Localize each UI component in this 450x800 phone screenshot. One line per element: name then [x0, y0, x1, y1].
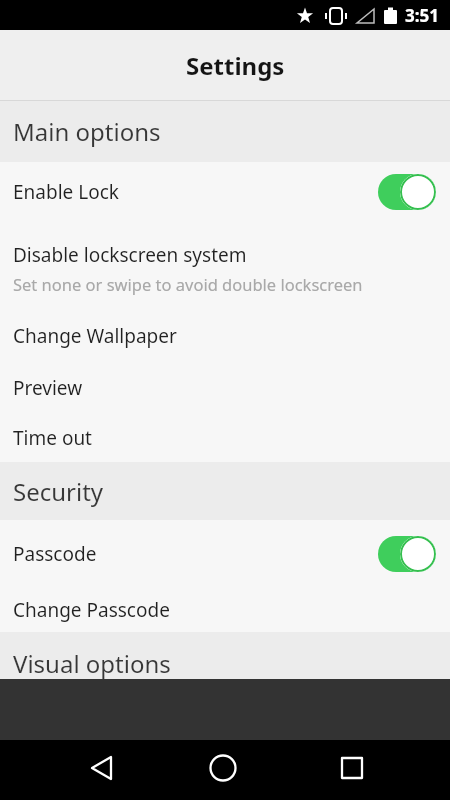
staticText: Security [13, 475, 104, 508]
button[interactable] [0, 740, 150, 800]
button[interactable] [300, 740, 450, 800]
button[interactable] [378, 174, 436, 210]
button[interactable]: Passcode [0, 520, 450, 588]
staticText: Passcode [13, 541, 97, 567]
staticText: Main options [13, 115, 161, 148]
button[interactable]: Preview [0, 362, 450, 414]
staticText: Enable Lock [13, 179, 119, 205]
button[interactable]: Change Wallpaper [0, 310, 450, 362]
staticText: Settings [186, 49, 285, 82]
button[interactable] [378, 536, 436, 572]
staticText: Visual options [13, 647, 171, 680]
staticText: Set none or swipe to avoid double locksc… [13, 273, 363, 295]
staticText: Change Wallpaper [13, 323, 177, 349]
button[interactable]: Time out [0, 414, 450, 462]
staticText: Change Passcode [13, 597, 170, 623]
button[interactable] [150, 740, 300, 800]
staticText: 3:51 [405, 4, 439, 27]
button[interactable]: Enable Lock [0, 162, 450, 222]
staticText: Disable lockscreen system [13, 242, 247, 268]
staticText: Preview [13, 375, 83, 401]
button[interactable]: Change Passcode [0, 588, 450, 632]
button[interactable]: Disable lockscreen system [0, 222, 450, 310]
staticText: Time out [13, 425, 92, 451]
